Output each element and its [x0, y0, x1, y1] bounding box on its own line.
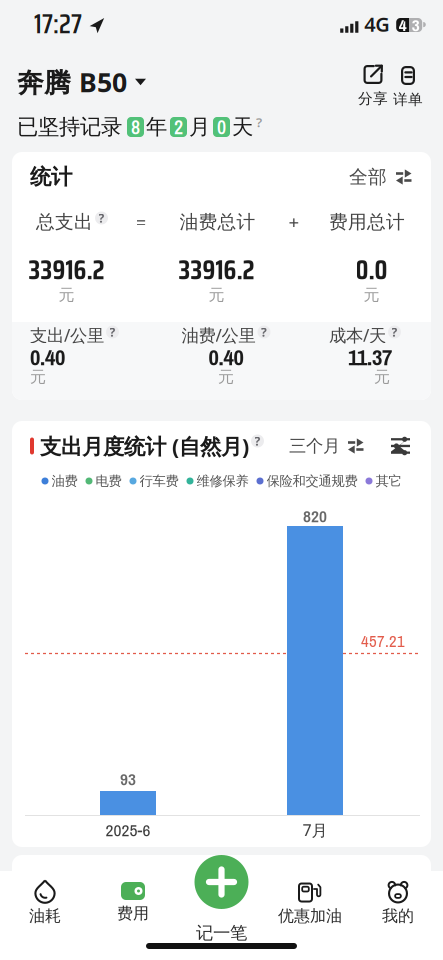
staticText: + [288, 210, 299, 234]
staticText: 年 [146, 114, 167, 140]
button[interactable]: 我的 [354, 855, 442, 922]
button[interactable]: 奔腾 B50 [0, 44, 146, 94]
staticText: 记一笔 [196, 922, 247, 944]
staticText: 元 [208, 285, 224, 305]
staticText: 元 [30, 367, 46, 387]
staticText: 总支出 [36, 210, 93, 233]
staticText: 费用总计 [329, 210, 405, 233]
staticText: 8 [131, 113, 140, 140]
staticText: 已坚持记录 [17, 114, 122, 140]
staticText: 4G [364, 11, 390, 37]
staticText: = [135, 210, 146, 234]
staticText: 电费 [95, 473, 121, 489]
staticText: 优惠加油 [278, 906, 342, 926]
staticText: 820 [303, 504, 327, 528]
button[interactable]: 全部 [349, 167, 412, 187]
staticText: 元 [363, 285, 379, 305]
staticText: 分享 [358, 89, 388, 107]
staticText: 保险和交通规费 [266, 473, 357, 489]
staticText: 元 [58, 285, 74, 305]
staticText: 支出月度统计 (自然月) [40, 432, 249, 460]
staticText: 成本/天 [329, 323, 386, 346]
button[interactable]: 优惠加油 [266, 855, 354, 922]
button[interactable]: 记一笔 [177, 855, 266, 940]
staticText: 2025-6 [105, 818, 150, 842]
staticText: 油费 [51, 473, 77, 489]
staticText: 油费总计 [179, 210, 255, 233]
staticText: 月 [189, 114, 210, 140]
staticText: ? [109, 324, 115, 340]
staticText: 天 [232, 114, 253, 140]
staticText: 3 [412, 13, 420, 37]
button[interactable]: 油耗 [1, 855, 89, 922]
button[interactable]: 详单 [393, 65, 423, 106]
staticText: 费用 [117, 904, 149, 923]
staticText: 7月 [302, 819, 327, 841]
staticText: 0.40 [30, 342, 65, 372]
button[interactable]: 图表设置 [391, 436, 410, 455]
button[interactable]: 费用 [89, 855, 177, 920]
staticText: 我的 [382, 906, 414, 926]
staticText: 油耗 [29, 906, 61, 926]
staticText: 33916.2 [28, 249, 104, 291]
staticText: 其它 [375, 473, 401, 489]
staticText: 11.37 [348, 342, 392, 372]
staticText: 详单 [393, 90, 423, 108]
staticText: ? [391, 324, 397, 340]
staticText: 93 [120, 767, 136, 791]
staticText: 17:27 [34, 3, 82, 45]
staticText: ? [98, 210, 104, 226]
staticText: 全部 [349, 165, 387, 188]
staticText: 元 [218, 367, 234, 387]
staticText: 油费/公里 [181, 323, 255, 346]
staticText: 支出/公里 [30, 323, 104, 346]
staticText: ? [261, 324, 267, 340]
staticText: 33916.2 [178, 249, 254, 291]
staticText: 奔腾 B50 [17, 64, 127, 100]
staticText: ? [256, 113, 262, 131]
staticText: 三个月 [289, 435, 340, 457]
button[interactable]: 三个月 [289, 436, 364, 456]
staticText: 0.0 [355, 249, 387, 291]
staticText: 0 [217, 113, 226, 140]
staticText: 维修保养 [196, 473, 248, 489]
staticText: 统计 [30, 164, 72, 190]
staticText: 行车费 [139, 473, 178, 489]
staticText: ? [254, 433, 260, 449]
staticText: 457.21 [361, 630, 405, 652]
staticText: 4 [399, 13, 407, 37]
staticText: 元 [374, 367, 390, 387]
staticText: 2 [174, 113, 183, 140]
staticText: 0.40 [208, 342, 243, 372]
button[interactable]: 分享 [358, 65, 388, 105]
